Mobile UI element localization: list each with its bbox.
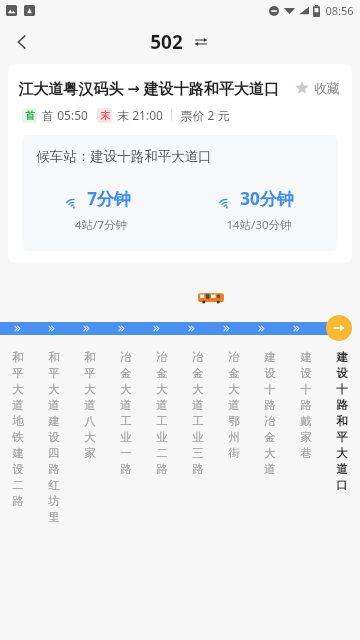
- button[interactable]: 30分钟: [180, 187, 338, 233]
- staticText: 三: [192, 446, 204, 460]
- button[interactable]: Switch direction: [191, 32, 211, 52]
- staticText: 建: [12, 446, 24, 460]
- staticText: 建: [336, 350, 348, 364]
- button[interactable]: 建: [288, 350, 324, 462]
- staticText: 工: [156, 414, 168, 428]
- staticText: 路: [300, 398, 312, 412]
- staticText: 四: [48, 446, 60, 460]
- button[interactable]: 和: [72, 350, 108, 462]
- staticText: 路: [264, 398, 276, 412]
- staticText: 大: [336, 446, 348, 460]
- staticText: 大: [84, 382, 96, 396]
- staticText: 收藏: [314, 80, 340, 96]
- staticText: 路: [12, 494, 24, 508]
- staticText: 大: [264, 446, 276, 460]
- staticText: 金: [192, 366, 204, 380]
- button[interactable]: 冶: [108, 350, 144, 478]
- staticText: 路: [156, 462, 168, 476]
- staticText: 和: [48, 350, 60, 364]
- staticText: 街: [228, 446, 240, 460]
- staticText: 候车站：建设十路和平大道口: [36, 148, 212, 165]
- staticText: 冶: [192, 350, 204, 364]
- staticText: 铁: [12, 430, 24, 444]
- staticText: 坊: [48, 494, 60, 508]
- staticText: 大: [228, 382, 240, 396]
- staticText: 一: [120, 446, 132, 460]
- staticText: 冶: [120, 350, 132, 364]
- button[interactable]: Back: [0, 20, 44, 64]
- staticText: 和: [12, 350, 24, 364]
- staticText: 家: [300, 430, 312, 444]
- button[interactable]: 冶: [216, 350, 252, 462]
- staticText: 和: [84, 350, 96, 364]
- staticText: 冶: [156, 350, 168, 364]
- staticText: 路: [192, 462, 204, 476]
- button[interactable]: 建: [324, 350, 360, 494]
- staticText: 十: [336, 382, 348, 396]
- staticText: 设: [48, 430, 60, 444]
- staticText: 502: [150, 29, 183, 55]
- staticText: 末 21:00: [117, 107, 163, 123]
- staticText: 7分钟: [87, 187, 131, 210]
- staticText: 大: [192, 382, 204, 396]
- staticText: 业: [120, 430, 132, 444]
- staticText: 首: [25, 109, 35, 122]
- staticText: 建: [48, 414, 60, 428]
- staticText: 道: [156, 398, 168, 412]
- staticText: 里: [48, 510, 60, 524]
- staticText: 路: [48, 462, 60, 476]
- staticText: 平: [12, 366, 24, 380]
- button[interactable]: 和: [36, 350, 72, 526]
- button[interactable]: 冶: [180, 350, 216, 478]
- staticText: 首 05:50: [42, 107, 88, 123]
- staticText: 冶: [228, 350, 240, 364]
- staticText: 设: [300, 366, 312, 380]
- staticText: 业: [156, 430, 168, 444]
- staticText: 4站/7分钟: [75, 217, 127, 233]
- staticText: 金: [264, 430, 276, 444]
- staticText: 州: [228, 430, 240, 444]
- staticText: 巷: [300, 446, 312, 460]
- staticText: 道: [336, 462, 348, 476]
- staticText: 道: [12, 398, 24, 412]
- staticText: 业: [192, 430, 204, 444]
- button[interactable]: 和: [0, 350, 36, 510]
- button[interactable]: Next: [326, 315, 352, 341]
- staticText: 30分钟: [240, 187, 294, 210]
- staticText: 设: [264, 366, 276, 380]
- staticText: 道: [48, 398, 60, 412]
- staticText: 设: [336, 366, 348, 380]
- staticText: 和: [336, 414, 348, 428]
- other: Bus position: [196, 291, 226, 305]
- staticText: 道: [84, 398, 96, 412]
- button[interactable]: 7分钟: [22, 187, 180, 233]
- staticText: 道: [228, 398, 240, 412]
- staticText: 家: [84, 446, 96, 460]
- staticText: 道: [264, 462, 276, 476]
- staticText: 末: [100, 109, 110, 122]
- staticText: 江大道粤汉码头 → 建设十路和平大道口: [18, 78, 279, 98]
- staticText: 路: [120, 462, 132, 476]
- staticText: 戴: [300, 414, 312, 428]
- button[interactable]: 建: [252, 350, 288, 478]
- staticText: 口: [336, 478, 348, 492]
- staticText: 大: [84, 430, 96, 444]
- staticText: 十: [264, 382, 276, 396]
- button[interactable]: 收藏: [293, 78, 342, 98]
- staticText: 大: [120, 382, 132, 396]
- staticText: 八: [84, 414, 96, 428]
- staticText: 地: [12, 414, 24, 428]
- staticText: 设: [12, 462, 24, 476]
- staticText: 大: [48, 382, 60, 396]
- staticText: 14站/30分钟: [226, 217, 292, 233]
- staticText: 道: [120, 398, 132, 412]
- button[interactable]: 冶: [144, 350, 180, 478]
- staticText: 平: [84, 366, 96, 380]
- staticText: 平: [336, 430, 348, 444]
- staticText: 金: [120, 366, 132, 380]
- staticText: 建: [300, 350, 312, 364]
- staticText: 十: [300, 382, 312, 396]
- staticText: 二: [12, 478, 24, 492]
- staticText: 建: [264, 350, 276, 364]
- staticText: 大: [156, 382, 168, 396]
